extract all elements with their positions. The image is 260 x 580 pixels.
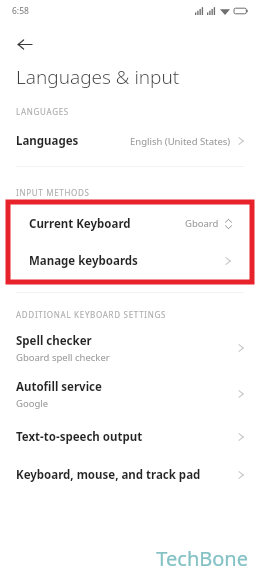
staticText: ADDITIONAL KEYBOARD SETTINGS <box>16 309 167 320</box>
button[interactable]: Back <box>10 30 38 58</box>
staticText: Gboard <box>185 217 219 230</box>
button[interactable]: Autofill service <box>0 374 260 414</box>
staticText: Text-to-speech output <box>16 429 143 445</box>
staticText: Keyboard, mouse, and track pad <box>16 467 201 483</box>
button[interactable]: Text-to-speech output <box>0 420 260 454</box>
button[interactable]: Keyboard, mouse, and track pad <box>0 458 260 492</box>
staticText: Autofill service <box>16 379 102 395</box>
staticText: Languages <box>16 133 79 149</box>
staticText: Google <box>16 397 49 410</box>
staticText: Spell checker <box>16 333 92 349</box>
staticText: Current Keyboard <box>29 216 131 232</box>
staticText: English (United States) <box>130 135 231 148</box>
staticText: Manage keyboards <box>29 253 138 269</box>
staticText: Gboard spell checker <box>16 351 110 364</box>
staticText: INPUT METHODS <box>16 187 90 198</box>
button[interactable]: Languages <box>0 125 260 157</box>
staticText: TechBone <box>156 545 248 572</box>
button[interactable]: Spell checker <box>0 328 260 368</box>
button[interactable]: Manage keyboards <box>13 244 247 277</box>
staticText: 6:58 <box>12 5 29 17</box>
button[interactable]: Current Keyboard <box>13 207 247 240</box>
staticText: Languages & input <box>16 64 180 90</box>
staticText: LANGUAGES <box>16 106 69 117</box>
